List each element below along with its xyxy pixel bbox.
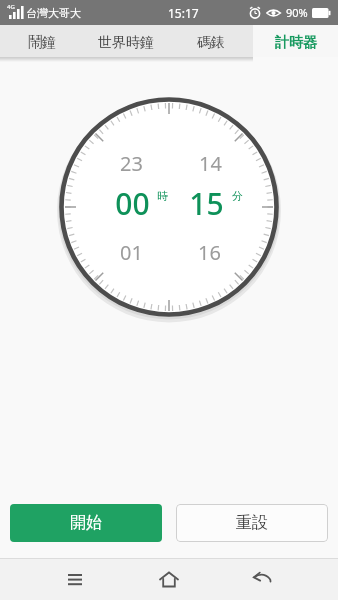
staticText: 4G	[7, 3, 15, 11]
button[interactable]: 計時器	[253, 25, 338, 57]
staticText: 15	[189, 183, 224, 224]
button[interactable]: 碼錶	[168, 25, 253, 57]
staticText: 00	[115, 183, 150, 224]
staticText: 23	[120, 150, 143, 177]
button[interactable]: 重設	[176, 504, 328, 542]
staticText: 開始	[70, 513, 102, 533]
staticText: 16	[198, 239, 221, 266]
staticText: 碼錶	[197, 34, 225, 52]
staticText: 時	[157, 189, 168, 203]
staticText: 90%	[286, 5, 308, 20]
staticText: 鬧鐘	[28, 34, 56, 52]
staticText: 分	[232, 189, 243, 203]
button[interactable]: 鬧鐘	[0, 25, 84, 57]
staticText: 世界時鐘	[98, 34, 154, 52]
staticText: 重設	[236, 513, 268, 533]
button[interactable]: 世界時鐘	[84, 25, 168, 57]
button[interactable]: 開始	[10, 504, 162, 542]
staticText: 14	[199, 150, 222, 177]
button[interactable]	[47, 558, 103, 600]
button[interactable]	[234, 558, 290, 600]
button[interactable]	[141, 558, 197, 600]
staticText: 台灣大哥大	[26, 6, 81, 20]
staticText: 15:17	[168, 5, 199, 21]
staticText: 01	[120, 239, 143, 266]
staticText: 計時器	[275, 34, 317, 52]
